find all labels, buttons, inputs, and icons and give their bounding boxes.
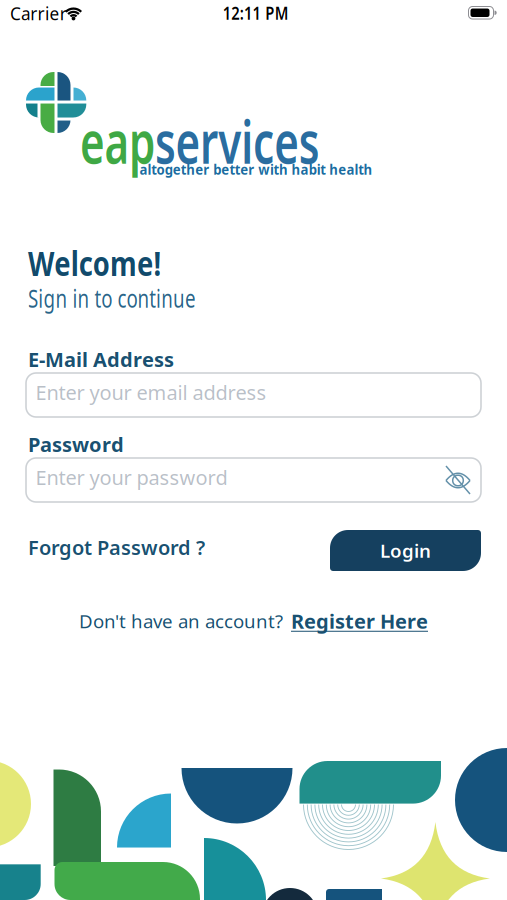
button[interactable]: Enter your email address (26, 373, 481, 417)
staticText: Sign in to continue (28, 281, 254, 315)
staticText: Login (380, 538, 431, 563)
staticText: E-Mail Address (28, 346, 174, 373)
staticText: Enter your email address (35, 379, 266, 406)
staticText: eap (80, 101, 175, 172)
staticText: Password (28, 431, 124, 458)
button[interactable]: Forgot Password ? (28, 534, 205, 561)
staticText: Don't have an account? (79, 609, 283, 633)
staticText: Enter your password (35, 464, 227, 491)
staticText: Carrier (10, 0, 72, 25)
button[interactable]: Enter your password (26, 458, 481, 502)
staticText: services (175, 101, 383, 172)
staticText: Welcome! (28, 241, 190, 285)
staticText: 12:11 PM (217, 1, 294, 24)
staticText: Forgot Password ? (28, 534, 205, 561)
button[interactable]: Show password (438, 460, 478, 500)
button[interactable]: Login (330, 530, 481, 571)
staticText: altogether better with habit health (126, 159, 385, 179)
staticText: Register Here (291, 608, 428, 634)
button[interactable]: Register Here (291, 608, 428, 634)
